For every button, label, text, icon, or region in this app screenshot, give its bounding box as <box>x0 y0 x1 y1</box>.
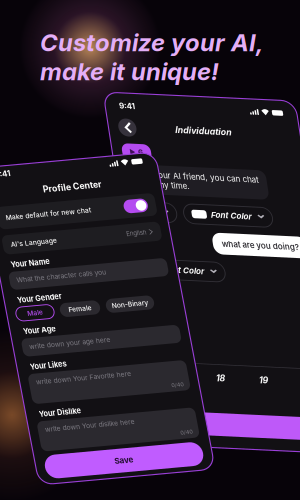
staticText: Font Color <box>139 124 221 144</box>
button[interactable]: Play voice, 6 <box>0 0 36 32</box>
staticText: write down your age here <box>6 285 168 301</box>
button[interactable]: Font Color <box>83 114 260 154</box>
button[interactable]: Female <box>80 214 160 242</box>
staticText: Your Gender <box>0 191 89 209</box>
staticText: your AI friend, you can chat any time. <box>34 50 244 88</box>
staticText: 18 <box>98 452 116 473</box>
staticText: Make default for new chat <box>8 27 179 44</box>
staticText: Customize your AI, <box>40 28 264 57</box>
button[interactable]: AI's Language <box>0 70 300 108</box>
button[interactable]: Font Color <box>0 229 148 269</box>
staticText: Your Dislike <box>0 419 84 437</box>
staticText: write down Your dislike here <box>6 451 185 467</box>
staticText: AI's Language <box>8 81 100 97</box>
staticText: Your Likes <box>0 324 73 342</box>
staticText: write down Your Favorite here <box>6 356 196 372</box>
staticText: 17 <box>12 452 29 473</box>
staticText: Font Color <box>26 239 108 259</box>
staticText: make it unique! <box>40 57 219 86</box>
staticText: Your Age <box>0 254 65 271</box>
button[interactable]: Make default for new chat <box>0 13 300 58</box>
staticText: What the character calls you <box>6 152 185 168</box>
staticText: Non-Binary <box>183 220 256 236</box>
staticText: 19 <box>184 452 202 473</box>
button[interactable]: Non-Binary <box>172 214 268 242</box>
button[interactable]: Male <box>0 214 68 242</box>
staticText: Female <box>97 220 143 236</box>
staticText: what are you doing? <box>150 182 300 201</box>
staticText: Male <box>14 220 45 236</box>
